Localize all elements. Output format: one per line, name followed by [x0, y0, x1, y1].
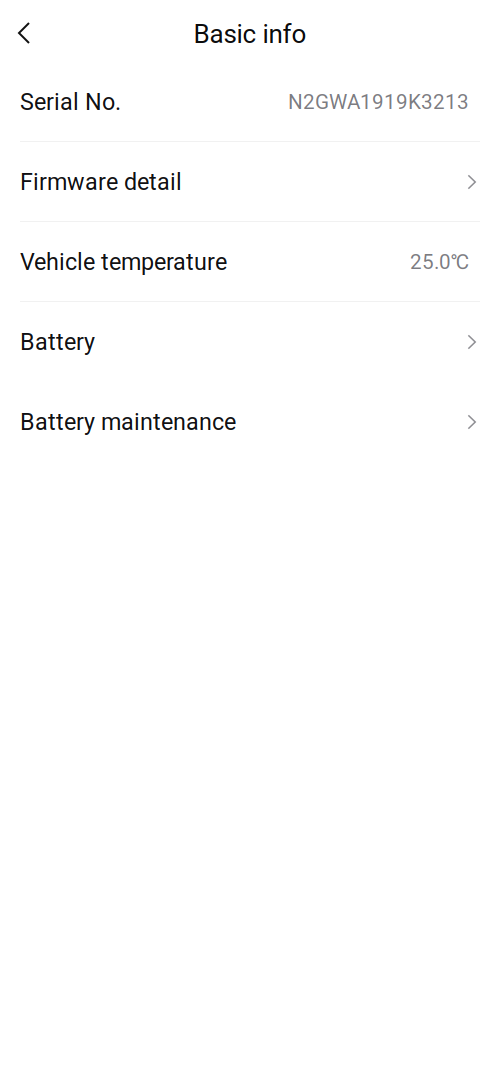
- staticText: Firmware detail: [20, 168, 182, 196]
- staticText: Battery maintenance: [20, 408, 236, 436]
- button[interactable]: Battery: [0, 302, 500, 382]
- staticText: 25.0℃: [410, 250, 469, 274]
- staticText: Serial No.: [20, 88, 121, 116]
- button[interactable]: Vehicle temperature: [0, 222, 500, 302]
- staticText: Basic info: [193, 19, 306, 49]
- button[interactable]: Serial No.: [0, 62, 500, 142]
- staticText: Battery: [20, 328, 95, 356]
- button[interactable]: Battery maintenance: [0, 382, 500, 462]
- staticText: Vehicle temperature: [20, 248, 227, 276]
- button[interactable]: Firmware detail: [0, 142, 500, 222]
- staticText: N2GWA1919K3213: [288, 90, 469, 114]
- button[interactable]: Back: [4, 7, 44, 55]
